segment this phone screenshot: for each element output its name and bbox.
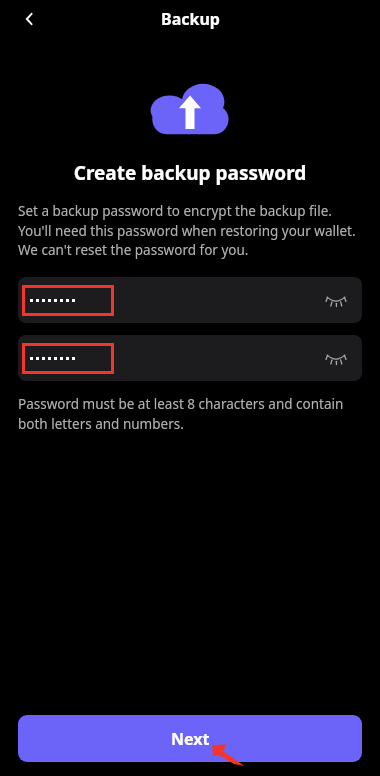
staticText: Next xyxy=(171,728,210,750)
button[interactable]: Show password xyxy=(322,286,350,314)
button[interactable]: Next xyxy=(18,715,362,762)
button[interactable]: Show password xyxy=(18,277,362,323)
staticText: Password must be at least 8 characters a… xyxy=(18,395,362,433)
staticText: Create backup password xyxy=(0,160,380,186)
button[interactable]: Show password xyxy=(18,335,362,381)
staticText: Backup xyxy=(161,8,220,30)
button[interactable]: Back xyxy=(14,3,46,35)
staticText: Set a backup password to encrypt the bac… xyxy=(18,202,366,259)
button[interactable]: Show password xyxy=(322,344,350,372)
